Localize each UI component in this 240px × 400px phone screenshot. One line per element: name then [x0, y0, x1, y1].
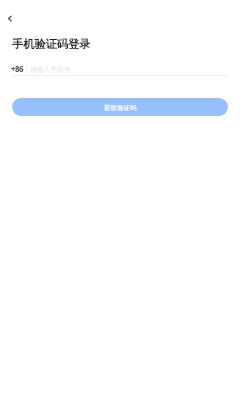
button[interactable]: 获取验证码: [12, 98, 228, 116]
button[interactable]: +86: [11, 62, 240, 76]
staticText: 获取验证码: [104, 104, 137, 112]
staticText: +86: [11, 64, 23, 75]
staticText: 请输入手机号: [30, 65, 71, 74]
staticText: 手机验证码登录: [12, 37, 91, 51]
button[interactable]: Back: [0, 8, 20, 28]
